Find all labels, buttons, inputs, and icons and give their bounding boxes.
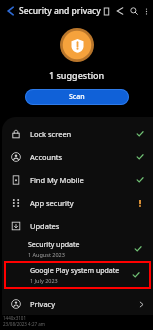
button[interactable]: Privacy (2, 293, 153, 315)
button[interactable]: Share (113, 4, 127, 18)
staticText: Accounts (30, 152, 136, 162)
staticText: Security and privacy (19, 5, 101, 17)
button[interactable]: Security update (2, 237, 153, 261)
button[interactable]: Accounts (2, 145, 153, 168)
button[interactable]: Google Play system update (4, 261, 151, 289)
button[interactable]: Scan (25, 89, 129, 105)
staticText: 1440x3101 (3, 315, 26, 321)
button[interactable]: Back (2, 2, 20, 20)
button[interactable]: More options (141, 6, 151, 16)
button[interactable]: Device (99, 4, 113, 18)
button[interactable]: Updates (2, 214, 153, 237)
button[interactable]: Search (127, 4, 141, 18)
staticText: App security (30, 198, 136, 208)
staticText: Updates (30, 221, 136, 231)
staticText: Security update (28, 240, 80, 250)
staticText: 1 suggestion (49, 69, 105, 81)
staticText: 1 July 2023 (30, 277, 58, 284)
staticText: 23/08/2023 4:27 am (3, 321, 45, 327)
staticText: Scan (69, 92, 85, 102)
button[interactable]: Lock screen (2, 122, 153, 145)
button[interactable]: Find My Mobile (2, 168, 153, 191)
staticText: Privacy (30, 299, 138, 309)
staticText: Lock screen (30, 129, 136, 139)
staticText: Google Play system update (30, 266, 120, 276)
staticText: Find My Mobile (30, 175, 136, 185)
button[interactable]: App security (2, 191, 153, 214)
staticText: 1 August 2023 (28, 251, 65, 258)
